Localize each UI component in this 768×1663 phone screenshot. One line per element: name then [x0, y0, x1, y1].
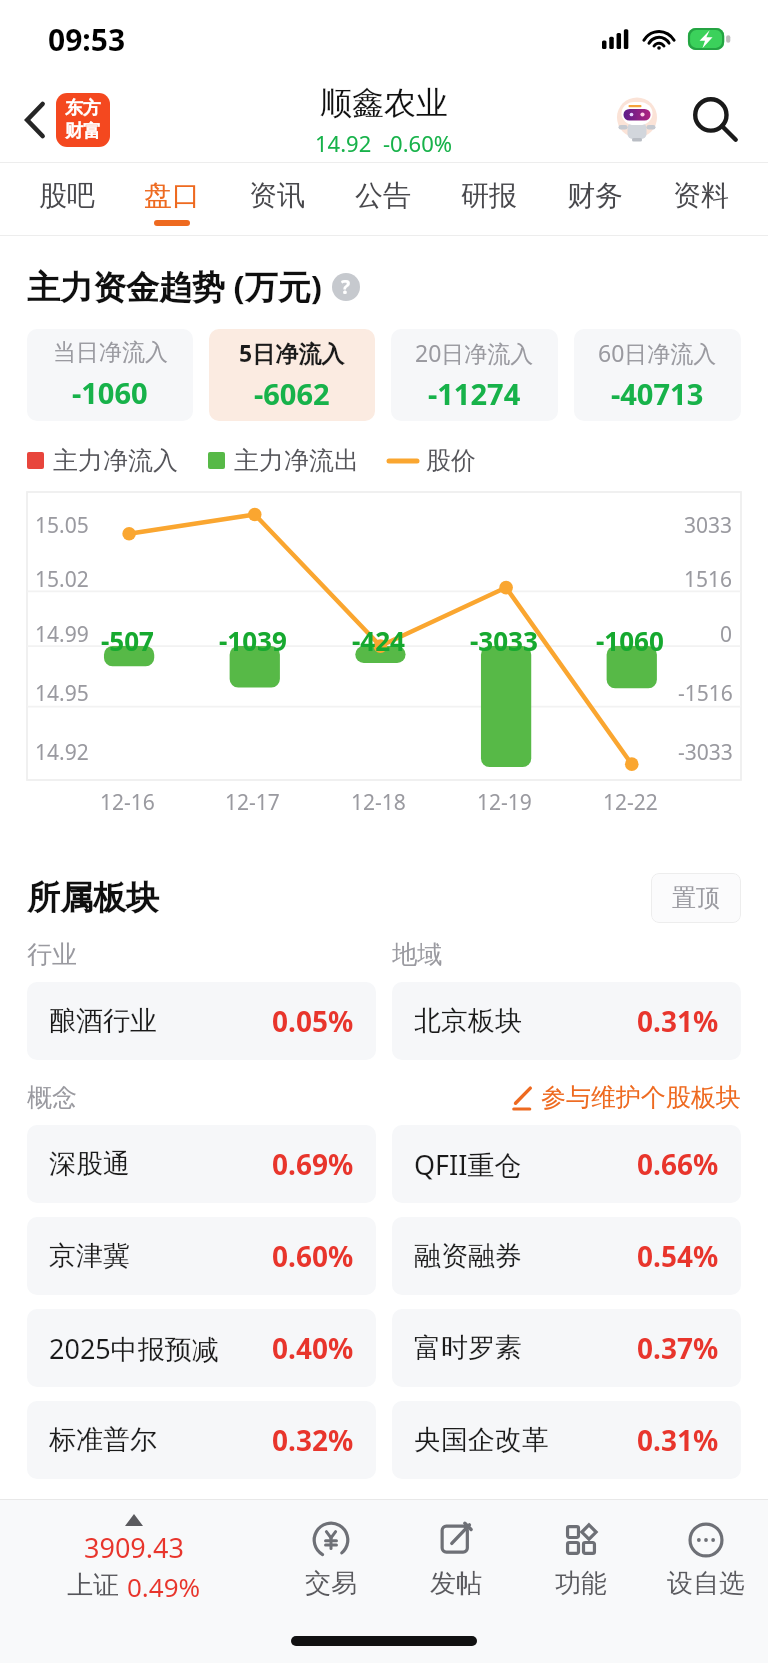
button[interactable]: 当日净流入 [27, 329, 193, 421]
staticText: 2025中报预减 [49, 1330, 219, 1367]
staticText: 0.40% [272, 1329, 354, 1367]
staticText: -1060 [596, 623, 664, 658]
staticText: 14.92 [35, 738, 89, 767]
staticText: 14.95 [35, 679, 89, 708]
staticText: 主力净流入 [53, 445, 178, 476]
staticText: 14.99 [35, 620, 89, 649]
button[interactable]: 置顶 [651, 873, 741, 923]
staticText: -0.60% [383, 128, 453, 158]
staticText: 12-16 [100, 788, 155, 817]
button[interactable]: Back [8, 92, 64, 148]
button[interactable]: 资料 [648, 162, 754, 236]
staticText: 3909.43 [84, 1529, 184, 1566]
staticText: 深股通 [49, 1147, 130, 1181]
staticText: 股价 [426, 445, 476, 476]
staticText: -3033 [470, 623, 538, 658]
button[interactable]: 央国企改革 [392, 1401, 741, 1479]
staticText: 东方 [65, 97, 101, 120]
staticText: 0.69% [272, 1145, 354, 1183]
staticText: -11274 [428, 374, 521, 413]
staticText: 12-19 [477, 788, 532, 817]
staticText: 北京板块 [414, 1004, 522, 1038]
staticText: -1039 [219, 623, 287, 658]
staticText: -507 [101, 623, 154, 658]
button[interactable]: 深股通 [27, 1125, 376, 1203]
staticText: 0.60% [272, 1237, 354, 1275]
staticText: 京津冀 [49, 1239, 130, 1273]
button[interactable]: 北京板块 [392, 982, 741, 1060]
staticText: 交易 [305, 1567, 357, 1600]
staticText: 富时罗素 [414, 1331, 522, 1365]
staticText: 发帖 [430, 1567, 482, 1600]
button[interactable]: 资讯 [224, 162, 330, 236]
button[interactable]: 参与维护个股板块 [509, 1082, 741, 1113]
staticText: 盘口 [144, 178, 200, 213]
staticText: -40713 [611, 374, 704, 413]
staticText: 0.05% [272, 1002, 354, 1040]
staticText: QFII重仓 [414, 1146, 522, 1183]
button[interactable]: 富时罗素 [392, 1309, 741, 1387]
staticText: 资料 [673, 178, 729, 213]
staticText: ? [341, 274, 351, 300]
staticText: 上证 [67, 1569, 119, 1602]
button[interactable]: 融资融券 [392, 1217, 741, 1295]
staticText: 地域 [392, 939, 442, 970]
button[interactable]: 5日净流入 [209, 329, 375, 421]
staticText: 设自选 [667, 1567, 745, 1600]
staticText: 研报 [461, 178, 517, 213]
staticText: 12-18 [351, 788, 406, 817]
button[interactable]: 主力资金趋势 (万元) [27, 264, 768, 309]
staticText: 0.49% [127, 1569, 201, 1604]
staticText: 顺鑫农业 [320, 83, 448, 123]
button[interactable]: 3909.43 [0, 1500, 268, 1618]
staticText: 当日净流入 [53, 338, 168, 367]
staticText: 0.32% [272, 1421, 354, 1459]
staticText: 融资融券 [414, 1239, 522, 1273]
button[interactable]: 交易 [268, 1500, 393, 1618]
staticText: 股吧 [39, 178, 95, 213]
staticText: 行业 [27, 939, 77, 970]
button[interactable]: 财务 [542, 162, 648, 236]
button[interactable]: 酿酒行业 [27, 982, 376, 1060]
staticText: 参与维护个股板块 [541, 1082, 741, 1113]
button[interactable]: Search [686, 91, 744, 149]
button[interactable]: 发帖 [393, 1500, 518, 1618]
button[interactable]: QFII重仓 [392, 1125, 741, 1203]
staticText: 主力净流出 [234, 445, 359, 476]
staticText: 央国企改革 [414, 1423, 549, 1457]
button[interactable]: 20日净流入 [391, 329, 558, 421]
button[interactable]: 2025中报预减 [27, 1309, 376, 1387]
staticText: 15.05 [35, 511, 89, 540]
staticText: 所属板块 [27, 877, 159, 919]
button[interactable]: 盘口 [119, 162, 224, 236]
button[interactable]: 60日净流入 [574, 329, 741, 421]
button[interactable]: 公告 [330, 162, 436, 236]
button[interactable]: 标准普尔 [27, 1401, 376, 1479]
staticText: 主力资金趋势 (万元) [27, 264, 322, 309]
staticText: 财务 [567, 178, 623, 213]
staticText: 0 [720, 620, 733, 649]
staticText: 概念 [27, 1082, 77, 1113]
staticText: -1516 [678, 679, 733, 708]
button[interactable]: 股吧 [14, 162, 119, 236]
staticText: 3033 [684, 511, 733, 540]
button[interactable]: 功能 [518, 1500, 643, 1618]
staticText: 09:53 [48, 19, 126, 60]
staticText: 12-22 [603, 788, 658, 817]
button[interactable]: 京津冀 [27, 1217, 376, 1295]
staticText: -1060 [72, 373, 148, 412]
button[interactable]: 研报 [436, 162, 542, 236]
staticText: 1516 [684, 565, 733, 594]
staticText: 5日净流入 [239, 337, 345, 368]
button[interactable]: 设自选 [643, 1500, 768, 1618]
staticText: 20日净流入 [415, 337, 534, 368]
staticText: 60日净流入 [598, 337, 717, 368]
staticText: 酿酒行业 [49, 1004, 157, 1038]
button[interactable]: East Money home [56, 93, 110, 147]
button[interactable]: AI assistant [608, 91, 666, 149]
staticText: -6062 [254, 374, 330, 413]
staticText: 置顶 [672, 883, 720, 913]
staticText: 14.92 [315, 128, 372, 158]
staticText: 0.66% [637, 1145, 719, 1183]
staticText: 资讯 [249, 178, 305, 213]
